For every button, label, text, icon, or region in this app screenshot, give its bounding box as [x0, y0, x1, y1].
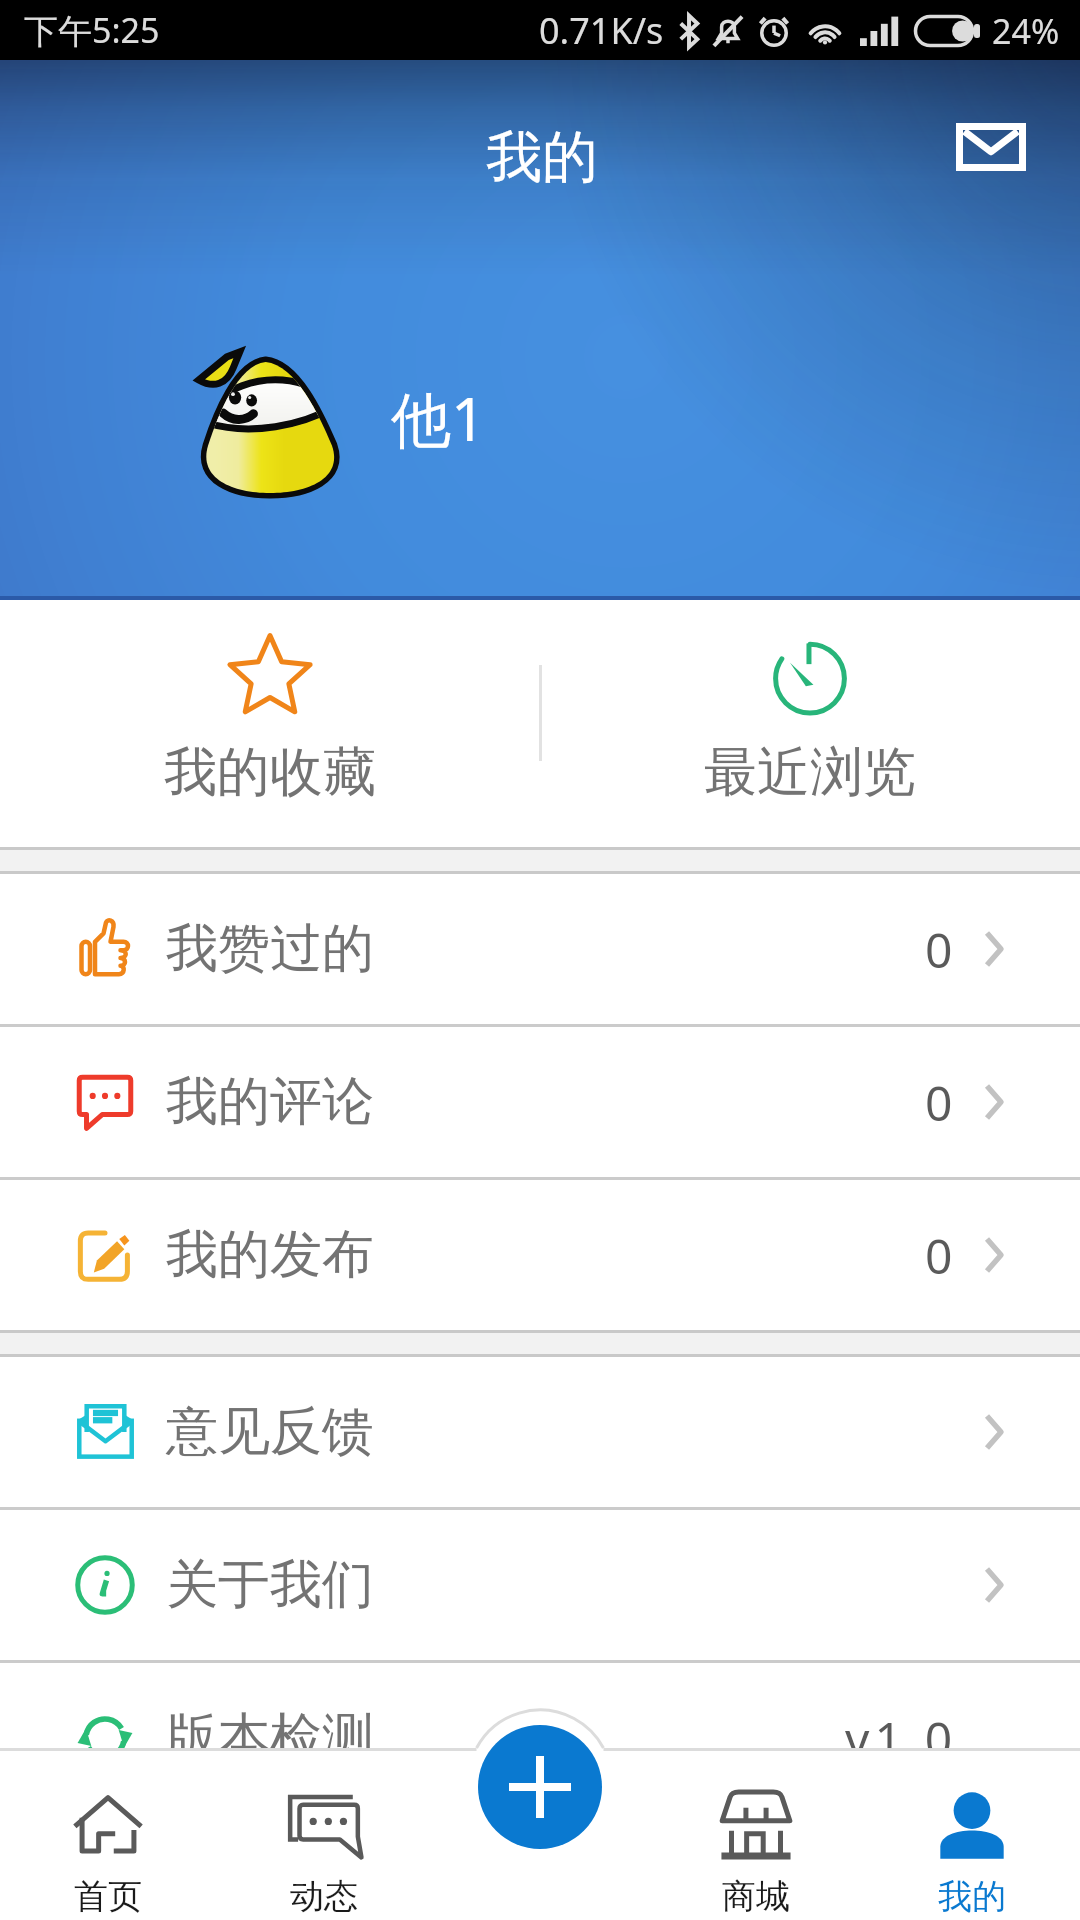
staticText: 我的发布	[166, 1222, 374, 1288]
staticText: 商城	[722, 1875, 790, 1918]
staticText: 最近浏览	[704, 739, 916, 806]
button[interactable]: 我的发布	[0, 1180, 1080, 1330]
staticText: 我的收藏	[164, 739, 376, 806]
staticText: 我的	[938, 1875, 1006, 1918]
button[interactable]: 首页	[0, 1748, 216, 1920]
staticText: 版本检测	[166, 1705, 374, 1771]
button[interactable]: 动态	[216, 1748, 432, 1920]
button[interactable]: 版本检测	[0, 1663, 1080, 1813]
button[interactable]: 意见反馈	[0, 1357, 1080, 1507]
button[interactable]: Add	[478, 1725, 602, 1849]
staticText: 24%	[992, 8, 1060, 54]
button[interactable]: 商城	[648, 1748, 864, 1920]
staticText: 我的评论	[166, 1069, 374, 1135]
button[interactable]: 关于我们	[0, 1510, 1080, 1660]
staticText: 0	[925, 1070, 953, 1135]
staticText: 0.71K/s	[539, 6, 664, 55]
button[interactable]: Messages	[940, 96, 1042, 198]
button[interactable]: 他1	[193, 336, 484, 498]
staticText: 0	[925, 917, 953, 982]
staticText: 他1	[391, 377, 486, 459]
staticText: 意见反馈	[166, 1399, 374, 1465]
button[interactable]: 最近浏览	[540, 600, 1080, 847]
button[interactable]: 我的收藏	[0, 600, 540, 847]
staticText: 首页	[74, 1875, 142, 1918]
button[interactable]: 我的评论	[0, 1027, 1080, 1177]
staticText: 0	[925, 1223, 953, 1288]
staticText: v1.0	[845, 1706, 958, 1771]
staticText: 我的	[486, 122, 598, 193]
staticText: 下午5:25	[24, 7, 160, 53]
button[interactable]: 我赞过的	[0, 874, 1080, 1024]
staticText: 关于我们	[166, 1552, 374, 1618]
staticText: 动态	[290, 1875, 358, 1918]
button[interactable]: 我的	[864, 1748, 1080, 1920]
staticText: 我赞过的	[166, 916, 374, 982]
